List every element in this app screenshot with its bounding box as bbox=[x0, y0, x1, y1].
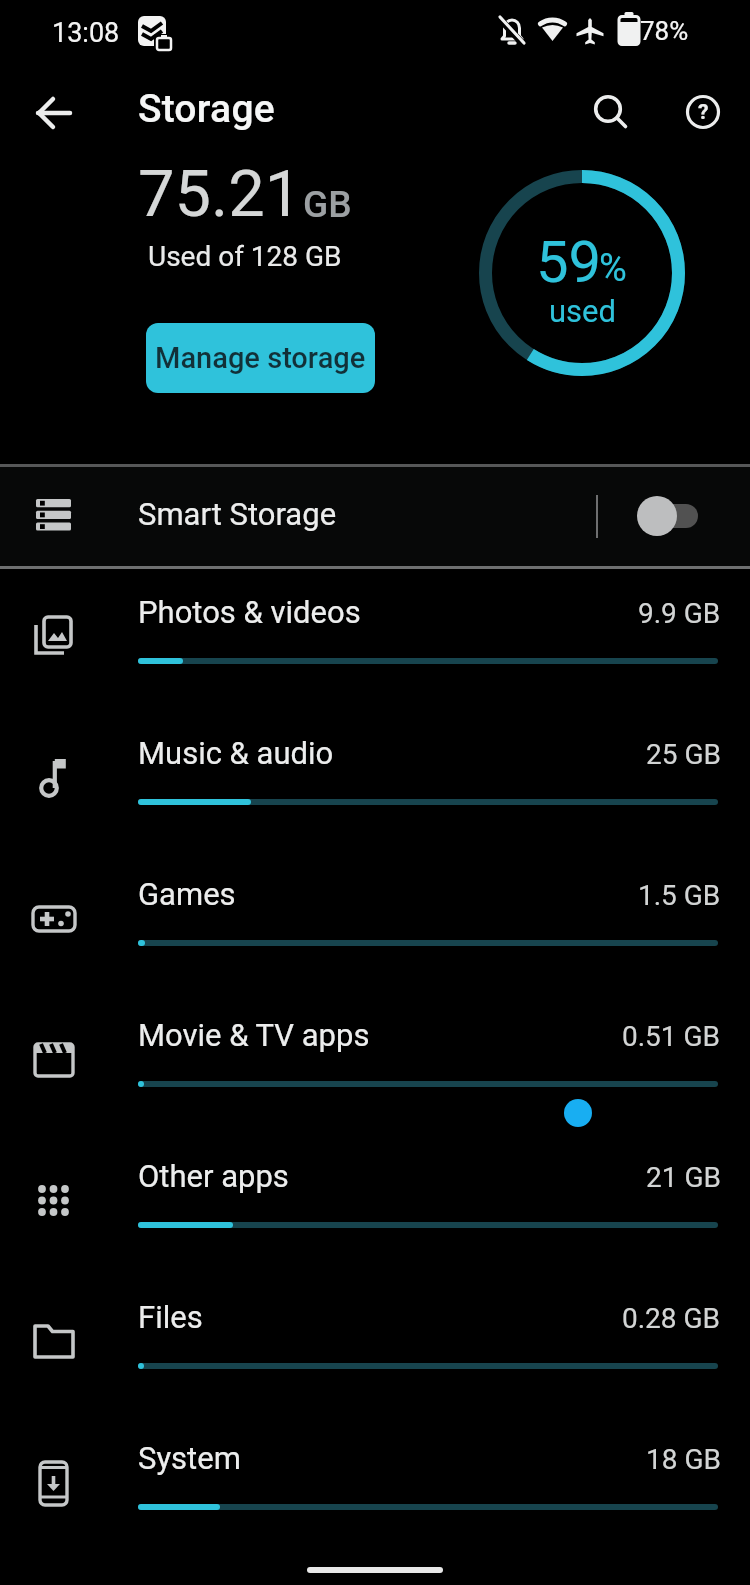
button[interactable] bbox=[0, 995, 750, 1136]
staticText: 25 GB bbox=[646, 738, 721, 771]
button[interactable] bbox=[582, 84, 640, 142]
staticText: ? bbox=[698, 100, 709, 125]
staticText: Used of 128 GB bbox=[148, 240, 342, 273]
staticText: used bbox=[549, 293, 617, 329]
staticText: 78% bbox=[640, 16, 689, 46]
staticText: Games bbox=[138, 876, 236, 912]
button[interactable] bbox=[0, 1136, 750, 1277]
staticText: GB bbox=[303, 183, 352, 226]
button[interactable]: ? bbox=[674, 84, 732, 142]
staticText: Music & audio bbox=[138, 735, 334, 771]
staticText: % bbox=[599, 246, 627, 291]
staticText: 21 GB bbox=[646, 1161, 721, 1194]
button[interactable] bbox=[0, 1277, 750, 1418]
staticText: 0.51 GB bbox=[622, 1020, 721, 1053]
button[interactable] bbox=[0, 572, 750, 713]
staticText: Photos & videos bbox=[138, 594, 361, 630]
staticText: Files bbox=[138, 1299, 203, 1335]
button[interactable] bbox=[0, 854, 750, 995]
staticText: 59 bbox=[536, 228, 602, 296]
button[interactable] bbox=[625, 486, 717, 546]
staticText: 0.28 GB bbox=[622, 1302, 721, 1335]
staticText: Movie & TV apps bbox=[138, 1017, 370, 1053]
staticText: 18 GB bbox=[646, 1443, 721, 1476]
staticText: Other apps bbox=[138, 1158, 289, 1194]
staticText: Storage bbox=[138, 86, 275, 132]
staticText: 13:08 bbox=[52, 17, 120, 49]
button[interactable] bbox=[0, 1418, 750, 1559]
button[interactable] bbox=[0, 713, 750, 854]
staticText: 9.9 GB bbox=[638, 597, 721, 630]
button[interactable]: Manage storage bbox=[146, 323, 375, 393]
staticText: 1.5 GB bbox=[638, 879, 721, 912]
button[interactable] bbox=[0, 466, 750, 566]
staticText: Smart Storage bbox=[138, 496, 337, 532]
staticText: Manage storage bbox=[155, 341, 366, 375]
button[interactable] bbox=[22, 81, 86, 145]
staticText: System bbox=[138, 1440, 241, 1476]
staticText: 75.21 bbox=[138, 156, 302, 232]
